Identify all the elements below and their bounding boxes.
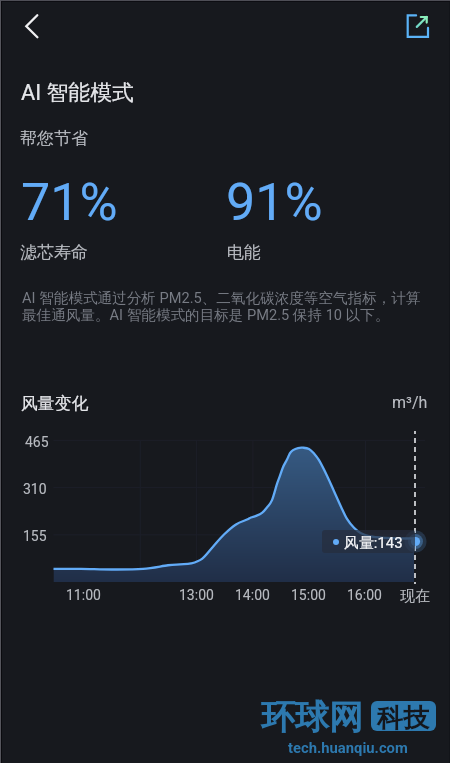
staticText: 风量:143 [344, 534, 403, 553]
button[interactable]: Share [395, 4, 439, 48]
staticText: 91% [226, 172, 323, 233]
staticText: 现在 [400, 587, 430, 606]
staticText: 71% [21, 172, 118, 233]
button[interactable]: Back [9, 4, 53, 48]
staticText: 环球网 [261, 696, 363, 739]
staticText: 风量变化 [21, 393, 89, 414]
staticText: 14:00 [235, 587, 270, 603]
staticText: 155 [23, 528, 47, 544]
staticText: 465 [25, 434, 49, 450]
staticText: 13:00 [179, 587, 214, 603]
staticText: AI 智能模式通过分析 PM2.5、二氧化碳浓度等空气指标，计算最佳通风量。AI… [22, 290, 428, 324]
staticText: 310 [23, 481, 47, 497]
staticText: 滤芯寿命 [20, 242, 88, 263]
staticText: 帮您节省 [20, 128, 88, 149]
staticText: 16:00 [347, 587, 382, 603]
staticText: 科技 [377, 702, 429, 735]
staticText: AI 智能模式 [21, 79, 134, 106]
staticText: 电能 [227, 242, 261, 263]
button[interactable] [322, 530, 415, 553]
staticText: 15:00 [291, 587, 326, 603]
staticText: 11:00 [66, 587, 101, 603]
staticText: m³/h [392, 393, 428, 412]
staticText: tech.huanqiu.com [288, 739, 408, 756]
